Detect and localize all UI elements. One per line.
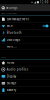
- button[interactable]: SIM management: [0, 16, 50, 23]
- staticText: SIM management: [7, 17, 29, 21]
- staticText: Home: [7, 61, 15, 64]
- button[interactable]: More...: [0, 43, 50, 50]
- button[interactable]: Wi-Fi: [0, 23, 50, 29]
- button[interactable]: Storage: [0, 80, 50, 87]
- button[interactable]: Battery: [0, 87, 50, 94]
- staticText: DEVICE: [1, 56, 6, 58]
- staticText: Wi-Fi: [7, 24, 13, 28]
- staticText: Battery: [7, 88, 16, 92]
- staticText: Display: [7, 75, 16, 78]
- staticText: 12:00: [40, 0, 49, 4]
- button[interactable]: Home: [0, 59, 50, 66]
- staticText: Bluetooth: [7, 31, 22, 34]
- staticText: WIRELESS & NETWORKS: [1, 13, 17, 15]
- button[interactable]: Data usage: [0, 36, 50, 43]
- staticText: Settings: [6, 6, 17, 9]
- button[interactable]: Audio profiles: [0, 66, 50, 73]
- staticText: Audio profiles: [7, 68, 28, 71]
- button[interactable]: Bluetooth: [0, 30, 50, 36]
- staticText: More...: [7, 45, 17, 48]
- button[interactable]: Display: [0, 73, 50, 80]
- staticText: Storage: [7, 81, 17, 85]
- staticText: Data usage: [7, 38, 21, 41]
